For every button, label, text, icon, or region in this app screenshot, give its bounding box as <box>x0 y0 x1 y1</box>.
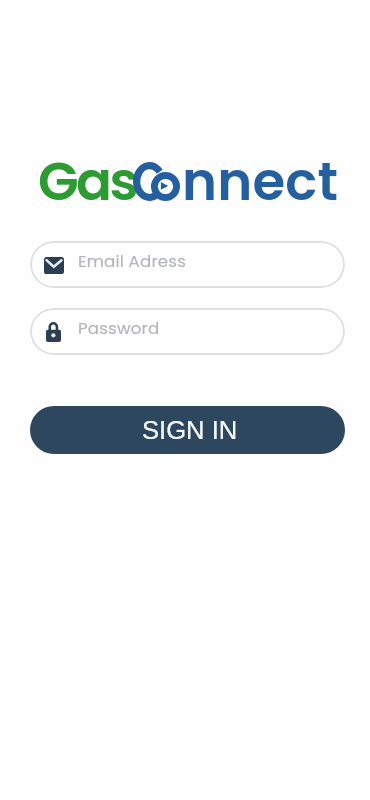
button[interactable]: SIGN IN <box>30 406 345 454</box>
button[interactable]: Email <box>30 241 345 288</box>
staticText: Gas <box>38 144 136 218</box>
staticText: Password <box>78 317 160 340</box>
staticText: SIGN IN <box>142 416 238 445</box>
button[interactable]: Password <box>30 308 345 355</box>
other: Password <box>46 322 61 342</box>
staticText: Email Adress <box>78 250 187 273</box>
staticText: nnect <box>182 144 339 218</box>
other: Email <box>44 257 64 274</box>
